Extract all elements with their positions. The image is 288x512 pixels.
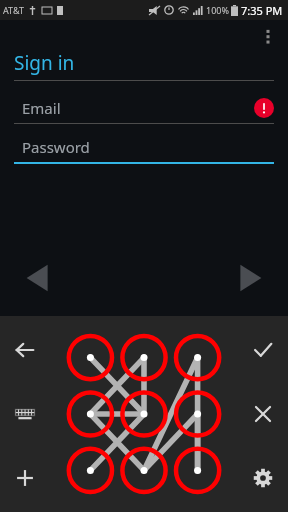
button[interactable]: Settings — [244, 459, 282, 497]
button[interactable]: Previous — [16, 256, 60, 300]
button[interactable]: Add — [6, 459, 44, 497]
staticText: 100% — [206, 4, 229, 16]
button[interactable]: Keyboard — [6, 395, 44, 433]
button[interactable]: More options — [254, 21, 282, 49]
button[interactable]: Clear — [244, 395, 282, 433]
staticText: Email — [22, 98, 61, 118]
staticText: AT&T — [3, 4, 24, 16]
staticText: 7:35 PM — [241, 3, 283, 18]
button[interactable]: Back — [6, 331, 44, 369]
button[interactable]: Confirm — [244, 331, 282, 369]
staticText: Sign in — [14, 50, 75, 76]
staticText: Password — [22, 137, 90, 157]
button[interactable]: Next — [228, 256, 272, 300]
